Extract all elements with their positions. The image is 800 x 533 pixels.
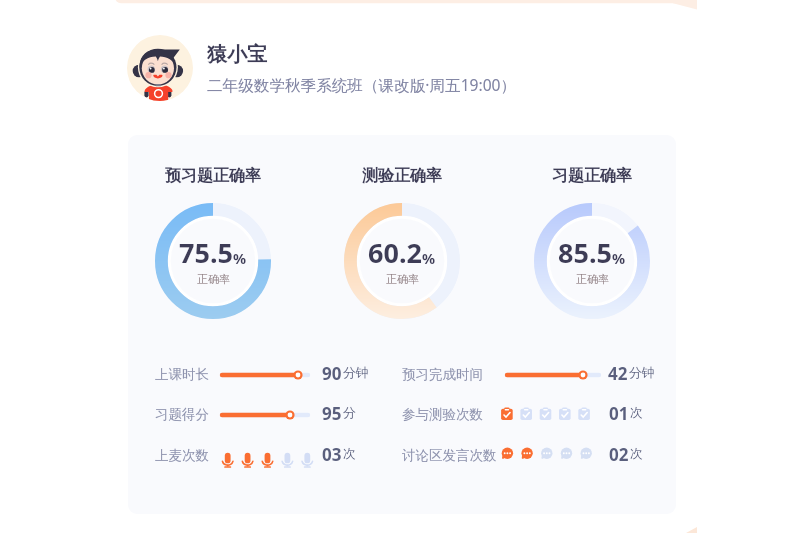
staticText: 分 (343, 405, 356, 421)
button[interactable]: 上课时长 (155, 365, 209, 384)
staticText: 预习完成时间 (402, 366, 483, 383)
button[interactable]: 学生头像 (127, 35, 503, 101)
staticText: 上麦次数 (155, 447, 209, 464)
staticText: 60.2 (368, 234, 422, 271)
staticText: 猿小宝 (207, 42, 267, 67)
staticText: % (612, 248, 626, 268)
staticText: 上课时长 (155, 366, 209, 383)
staticText: % (233, 248, 247, 268)
staticText: 正确率 (576, 272, 609, 286)
staticText: 讨论区发言次数 (402, 447, 497, 464)
staticText: 正确率 (197, 272, 230, 286)
button[interactable]: 习题得分 (155, 405, 209, 424)
staticText: 01 (609, 402, 629, 425)
button[interactable]: 上麦次数 (155, 446, 209, 465)
staticText: 03 (322, 443, 342, 466)
staticText: 参与测验次数 (402, 406, 483, 423)
staticText: 二年级数学秋季系统班（课改版·周五19:00） (207, 74, 517, 95)
staticText: 分钟 (629, 365, 655, 381)
staticText: 测验正确率 (362, 166, 442, 186)
staticText: 次 (630, 405, 643, 421)
other: 学生头像 (127, 35, 193, 101)
staticText: 42 (608, 362, 628, 385)
staticText: 75.5 (179, 234, 233, 271)
staticText: 习题正确率 (552, 166, 632, 186)
staticText: 85.5 (558, 234, 612, 271)
staticText: 次 (343, 446, 356, 462)
staticText: 正确率 (386, 272, 419, 286)
staticText: 95 (322, 402, 342, 425)
staticText: 02 (609, 443, 629, 466)
button[interactable]: 习题正确率 (492, 166, 676, 186)
staticText: 预习题正确率 (165, 166, 261, 186)
button[interactable]: 预习完成时间 (402, 365, 483, 384)
staticText: 分钟 (343, 365, 369, 381)
staticText: 次 (630, 446, 643, 462)
staticText: 习题得分 (155, 406, 209, 423)
button[interactable]: 预习题正确率 (128, 166, 313, 186)
button[interactable]: 参与测验次数 (402, 405, 483, 424)
staticText: % (422, 248, 436, 268)
staticText: 90 (322, 362, 342, 385)
button[interactable]: 测验正确率 (302, 166, 502, 186)
button[interactable]: 讨论区发言次数 (402, 446, 497, 465)
